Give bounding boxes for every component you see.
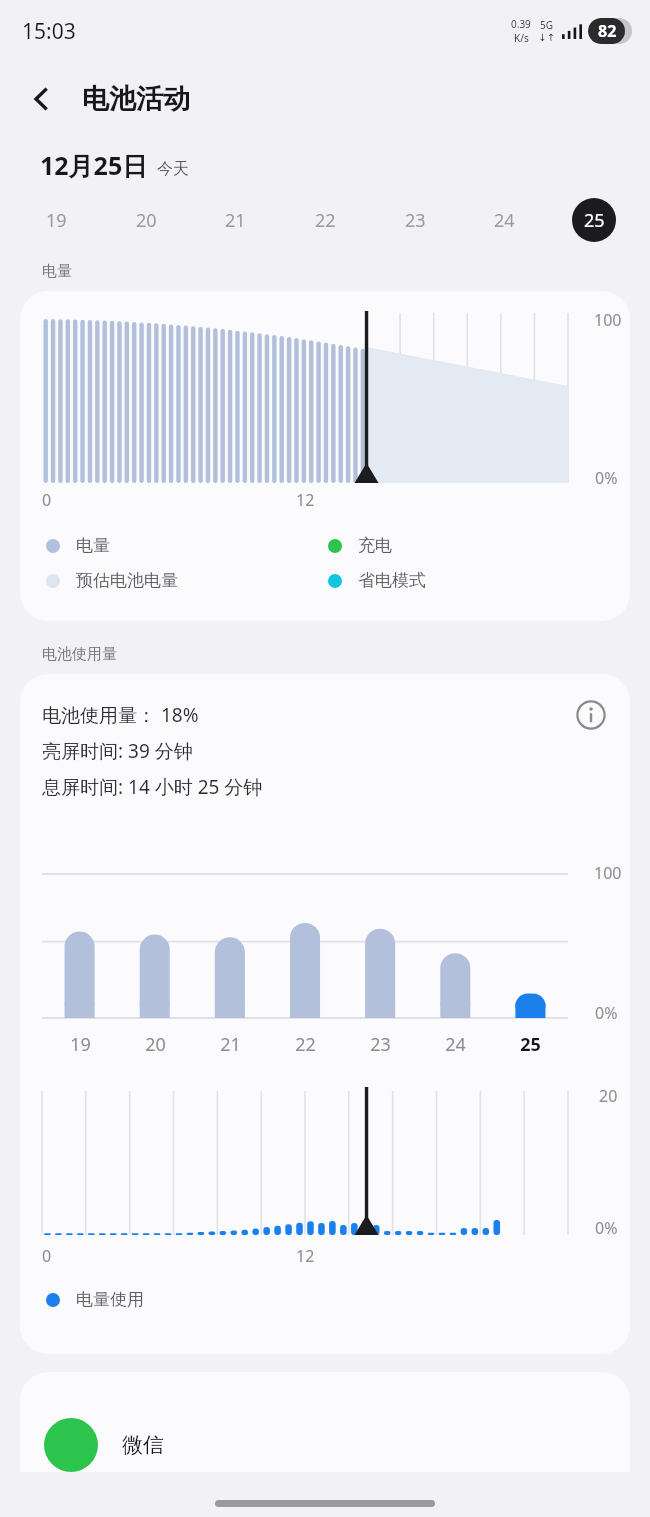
staticText: 20 [599,1085,618,1107]
staticText: 电池使用量 [42,645,117,664]
staticText: 100 [594,309,622,331]
staticText: 电量使用 [76,1289,144,1310]
staticText: 0% [595,467,618,489]
staticText: 息屏时间: 14 小时 25 分钟 [42,774,263,800]
staticText: 省电模式 [358,570,426,591]
button[interactable]: 24 [482,198,526,242]
staticText: 12 [296,489,315,511]
staticText: 23 [370,1032,391,1057]
staticText: 12月25日 [40,148,148,182]
button[interactable]: 22 [303,198,347,242]
staticText: 25 [584,208,605,233]
staticText: 19 [70,1032,91,1057]
staticText: 0% [595,1002,618,1024]
staticText: 25 [520,1032,541,1057]
staticText: 电池活动 [82,82,190,116]
staticText: 21 [220,1032,241,1057]
staticText: 0.39 [511,17,531,31]
staticText: 亮屏时间: 39 分钟 [42,738,193,764]
staticText: 0% [595,1217,618,1239]
staticText: ↓↑ [538,32,555,44]
button[interactable]: 返回 [14,71,70,127]
button[interactable]: 19 [34,198,78,242]
staticText: 21 [225,208,246,233]
staticText: 22 [295,1032,316,1057]
staticText: 0 [42,1245,52,1267]
staticText: 今天 [157,159,189,179]
staticText: 22 [315,208,336,233]
staticText: 充电 [358,535,392,556]
staticText: 100 [594,862,622,884]
button[interactable]: 20 [124,198,168,242]
staticText: 82 [598,20,617,42]
button[interactable]: 信息 [568,692,614,738]
button[interactable]: 100 [20,291,630,621]
staticText: 预估电池电量 [76,570,178,591]
button[interactable]: 电池使用量： 18% [20,674,630,1354]
staticText: 24 [445,1032,466,1057]
staticText: 23 [405,208,426,233]
staticText: 电池使用量： 18% [42,702,199,728]
staticText: 12 [296,1245,315,1267]
button[interactable]: 25 [572,198,616,242]
staticText: 19 [46,208,67,233]
staticText: 微信 [122,1432,164,1458]
staticText: 0 [42,489,52,511]
staticText: 电量 [42,262,72,281]
staticText: 20 [145,1032,166,1057]
button[interactable]: 23 [393,198,437,242]
staticText: K/s [514,31,529,45]
staticText: 15:03 [22,17,76,46]
staticText: 24 [494,208,515,233]
button[interactable]: 21 [213,198,257,242]
button[interactable]: 微信 [20,1372,630,1472]
staticText: 20 [136,208,157,233]
staticText: 5G [540,18,553,32]
staticText: 电量 [76,535,110,556]
